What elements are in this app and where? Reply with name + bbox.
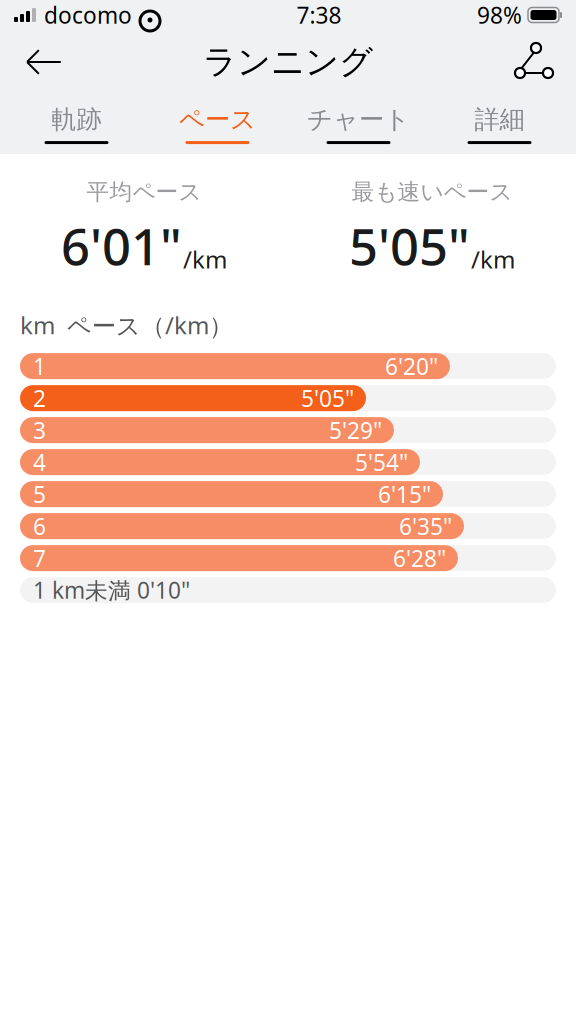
staticText: ペース [179,104,256,135]
staticText: 6'20" [385,351,438,381]
staticText: 6'28" [393,543,446,573]
staticText: 4 [33,447,46,477]
button[interactable]: 共有 [510,40,554,84]
staticText: 5 [33,479,46,509]
staticText: 1 [33,351,46,381]
staticText: 6'01" [61,212,182,279]
staticText: km ペース（/km） [20,309,233,341]
staticText: docomo [44,0,132,30]
staticText: 6'15" [378,479,431,509]
button[interactable]: 詳細 [429,96,570,152]
button[interactable]: ペース [147,96,288,152]
staticText: 2 [33,383,46,413]
staticText: 7 [33,543,46,573]
staticText: 軌跡 [51,104,101,135]
button[interactable]: 戻る [22,40,66,84]
staticText: /km [183,243,227,275]
staticText: ランニング [203,41,373,82]
staticText: 5'29" [329,415,382,445]
button[interactable]: チャート [288,96,429,152]
staticText: 1 km未満 0'10" [33,575,190,605]
staticText: 平均ペース [86,178,201,206]
staticText: チャート [307,104,410,135]
staticText: 98% [477,0,522,30]
staticText: 5'05" [349,212,470,279]
staticText: 6 [33,511,46,541]
staticText: 6'35" [399,511,452,541]
staticText: 5'54" [355,447,408,477]
staticText: 7:38 [296,0,341,30]
staticText: /km [471,243,515,275]
button[interactable]: 軌跡 [6,96,147,152]
staticText: 詳細 [474,104,524,135]
staticText: 最も速いペース [351,178,512,206]
staticText: 3 [33,415,46,445]
staticText: 5'05" [301,383,354,413]
